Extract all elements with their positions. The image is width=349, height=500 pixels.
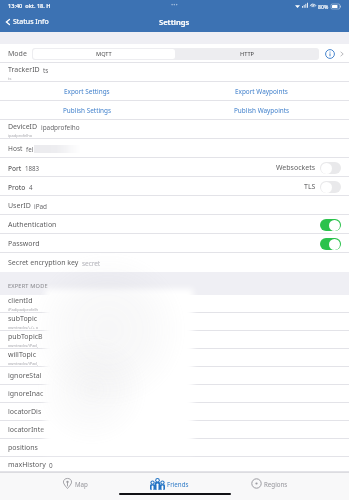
staticText: Status Info (13, 17, 49, 27)
staticText: 80% (318, 3, 329, 10)
staticText: 1883 (25, 164, 40, 172)
staticText: 4 (29, 183, 33, 191)
button[interactable]: Disabled (320, 162, 341, 174)
button[interactable]: positions (0, 439, 349, 457)
button[interactable]: Friends (150, 473, 189, 494)
button[interactable]: Export Settings (0, 82, 349, 101)
staticText: positions (8, 443, 38, 453)
button[interactable]: subTopic (0, 313, 349, 331)
button[interactable]: Regions (251, 473, 288, 494)
staticText: 13:40 okt. 18. H (8, 2, 51, 10)
button[interactable]: HTTP (175, 49, 318, 59)
staticText: maxHistory (8, 460, 46, 470)
staticText: pubTopicB (8, 332, 43, 342)
button[interactable]: Host (0, 139, 349, 158)
button[interactable]: Port (0, 158, 349, 177)
staticText: ignoreStal (8, 371, 42, 381)
staticText: iPad (34, 202, 48, 211)
staticText: Publish Waypoints (234, 106, 290, 115)
button[interactable]: maxHistory (0, 457, 349, 472)
staticText: Settings (159, 17, 190, 27)
button[interactable]: Export Waypoints (174, 82, 349, 101)
staticText: Secret encryption key (8, 258, 79, 268)
staticText: owntracks/iPad, (8, 361, 38, 366)
button[interactable]: UserID (0, 196, 349, 215)
button[interactable]: TrackerID (0, 63, 349, 82)
staticText: Mode (8, 49, 27, 59)
staticText: Authentication (8, 220, 57, 230)
staticText: subTopic (8, 314, 38, 324)
staticText: ts (8, 76, 12, 81)
button[interactable]: willTopic (0, 349, 349, 367)
staticText: fel (26, 145, 34, 153)
staticText: TLS (304, 182, 316, 192)
staticText: owntracks/+/+ o (8, 325, 39, 330)
staticText: DeviceID (8, 122, 38, 132)
staticText: ipadprofelho (8, 133, 33, 138)
button[interactable]: MQTT (33, 49, 175, 59)
button[interactable]: locatorDis (0, 403, 349, 421)
staticText: Proto (8, 183, 26, 192)
staticText: UserID (8, 201, 31, 211)
staticText: Host (8, 144, 23, 153)
button[interactable]: Enabled (320, 238, 341, 250)
button[interactable]: pubTopicB (0, 331, 349, 349)
button[interactable]: Publish Settings (0, 101, 174, 120)
staticText: Export Settings (64, 87, 110, 96)
button[interactable]: Authentication (0, 215, 349, 234)
button[interactable]: Map (62, 473, 88, 494)
staticText: Friends (167, 480, 189, 488)
button[interactable]: ignoreInac (0, 385, 349, 403)
button[interactable]: Publish Settings (0, 101, 349, 120)
staticText: iPadipadprofelh (8, 307, 38, 312)
staticText: 0 (49, 461, 53, 470)
staticText: Export Waypoints (235, 87, 288, 96)
button[interactable]: DeviceID (0, 120, 349, 139)
staticText: EXPERT MODE (8, 282, 48, 290)
button[interactable]: Publish Waypoints (174, 101, 349, 120)
staticText: secret (82, 259, 101, 268)
button[interactable]: Proto (0, 177, 349, 196)
staticText: Websockets (276, 163, 316, 173)
staticText: ipadprofelho (41, 123, 80, 132)
staticText: willTopic (8, 350, 37, 360)
staticText: HTTP (240, 50, 254, 58)
button[interactable]: Information (324, 48, 336, 60)
button[interactable]: clientId (0, 295, 349, 313)
button[interactable]: Mode (0, 44, 349, 63)
staticText: ts (43, 66, 49, 75)
button[interactable]: Enabled (320, 219, 341, 231)
button[interactable]: Secret encryption key (0, 253, 349, 272)
staticText: locatorDis (8, 407, 42, 417)
button[interactable]: ignoreStal (0, 367, 349, 385)
staticText: MQTT (96, 50, 112, 58)
staticText: Map (75, 480, 88, 488)
staticText: ignoreInac (8, 389, 44, 399)
staticText: Publish Settings (63, 106, 112, 115)
button[interactable]: Export Settings (0, 82, 174, 101)
button[interactable]: Status Info (4, 17, 49, 27)
staticText: owntracks/iPad, (8, 343, 38, 348)
staticText: ••• (171, 1, 178, 9)
button[interactable]: Disabled (320, 181, 341, 193)
staticText: clientId (8, 296, 33, 306)
staticText: Password (8, 239, 40, 249)
button[interactable]: Password (0, 234, 349, 253)
staticText: Port (8, 164, 22, 173)
staticText: TrackerID (8, 65, 40, 75)
button[interactable]: locatorInte (0, 421, 349, 439)
staticText: locatorInte (8, 425, 45, 435)
staticText: Regions (264, 480, 288, 488)
